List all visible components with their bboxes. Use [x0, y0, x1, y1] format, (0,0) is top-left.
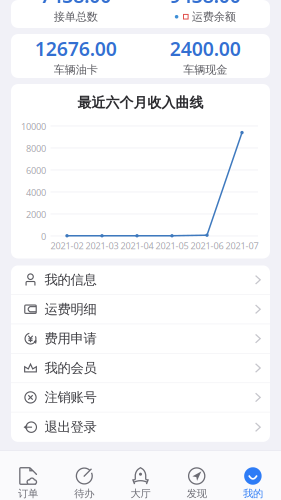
button[interactable]: 注销账号	[11, 383, 270, 412]
staticText: 大厅	[130, 487, 150, 500]
staticText: 8000	[26, 142, 46, 155]
staticText: 我的信息	[44, 271, 96, 288]
button[interactable]: 订单	[0, 451, 56, 500]
staticText: 2021-03	[85, 239, 118, 252]
button[interactable]: 我的	[225, 451, 281, 500]
staticText: 2021-04	[120, 239, 153, 252]
staticText: 0	[41, 230, 46, 243]
staticText: 2021-05	[155, 239, 188, 252]
staticText: 运费明细	[44, 301, 96, 318]
staticText: 费用申请	[44, 330, 96, 347]
button[interactable]: 退出登录	[11, 412, 270, 442]
staticText: 待办	[74, 487, 94, 500]
button[interactable]: 我的信息	[11, 265, 270, 295]
staticText: 我的会员	[44, 360, 96, 376]
staticText: 最近六个月收入曲线	[77, 94, 203, 111]
staticText: 订单	[18, 487, 38, 500]
staticText: 2021-07	[225, 239, 258, 252]
staticText: 车辆现金	[183, 63, 227, 77]
button[interactable]: 待办	[56, 451, 112, 500]
staticText: 2400.00	[170, 35, 241, 62]
staticText: 6000	[26, 164, 46, 177]
staticText: 7438.00	[40, 0, 111, 9]
button[interactable]: 我的会员	[11, 354, 270, 383]
staticText: 车辆油卡	[54, 63, 98, 77]
staticText: 2021-02	[50, 239, 83, 252]
button[interactable]: 大厅	[112, 451, 169, 500]
button[interactable]: 发现	[169, 451, 225, 500]
staticText: 9438.00	[170, 0, 241, 9]
staticText: 发现	[187, 487, 207, 500]
staticText: 10000	[21, 120, 46, 133]
staticText: 4000	[26, 186, 46, 199]
staticText: 退出登录	[44, 419, 96, 436]
button[interactable]: 运费明细	[11, 295, 270, 324]
button[interactable]: 费用申请	[11, 324, 270, 354]
staticText: 我的	[243, 487, 263, 500]
staticText: 12676.00	[35, 35, 117, 62]
staticText: 接单总数	[54, 10, 98, 24]
staticText: 2021-06	[190, 239, 223, 252]
staticText: 注销账号	[44, 389, 96, 406]
staticText: 2000	[26, 208, 46, 221]
staticText: 运费余额	[192, 10, 236, 24]
